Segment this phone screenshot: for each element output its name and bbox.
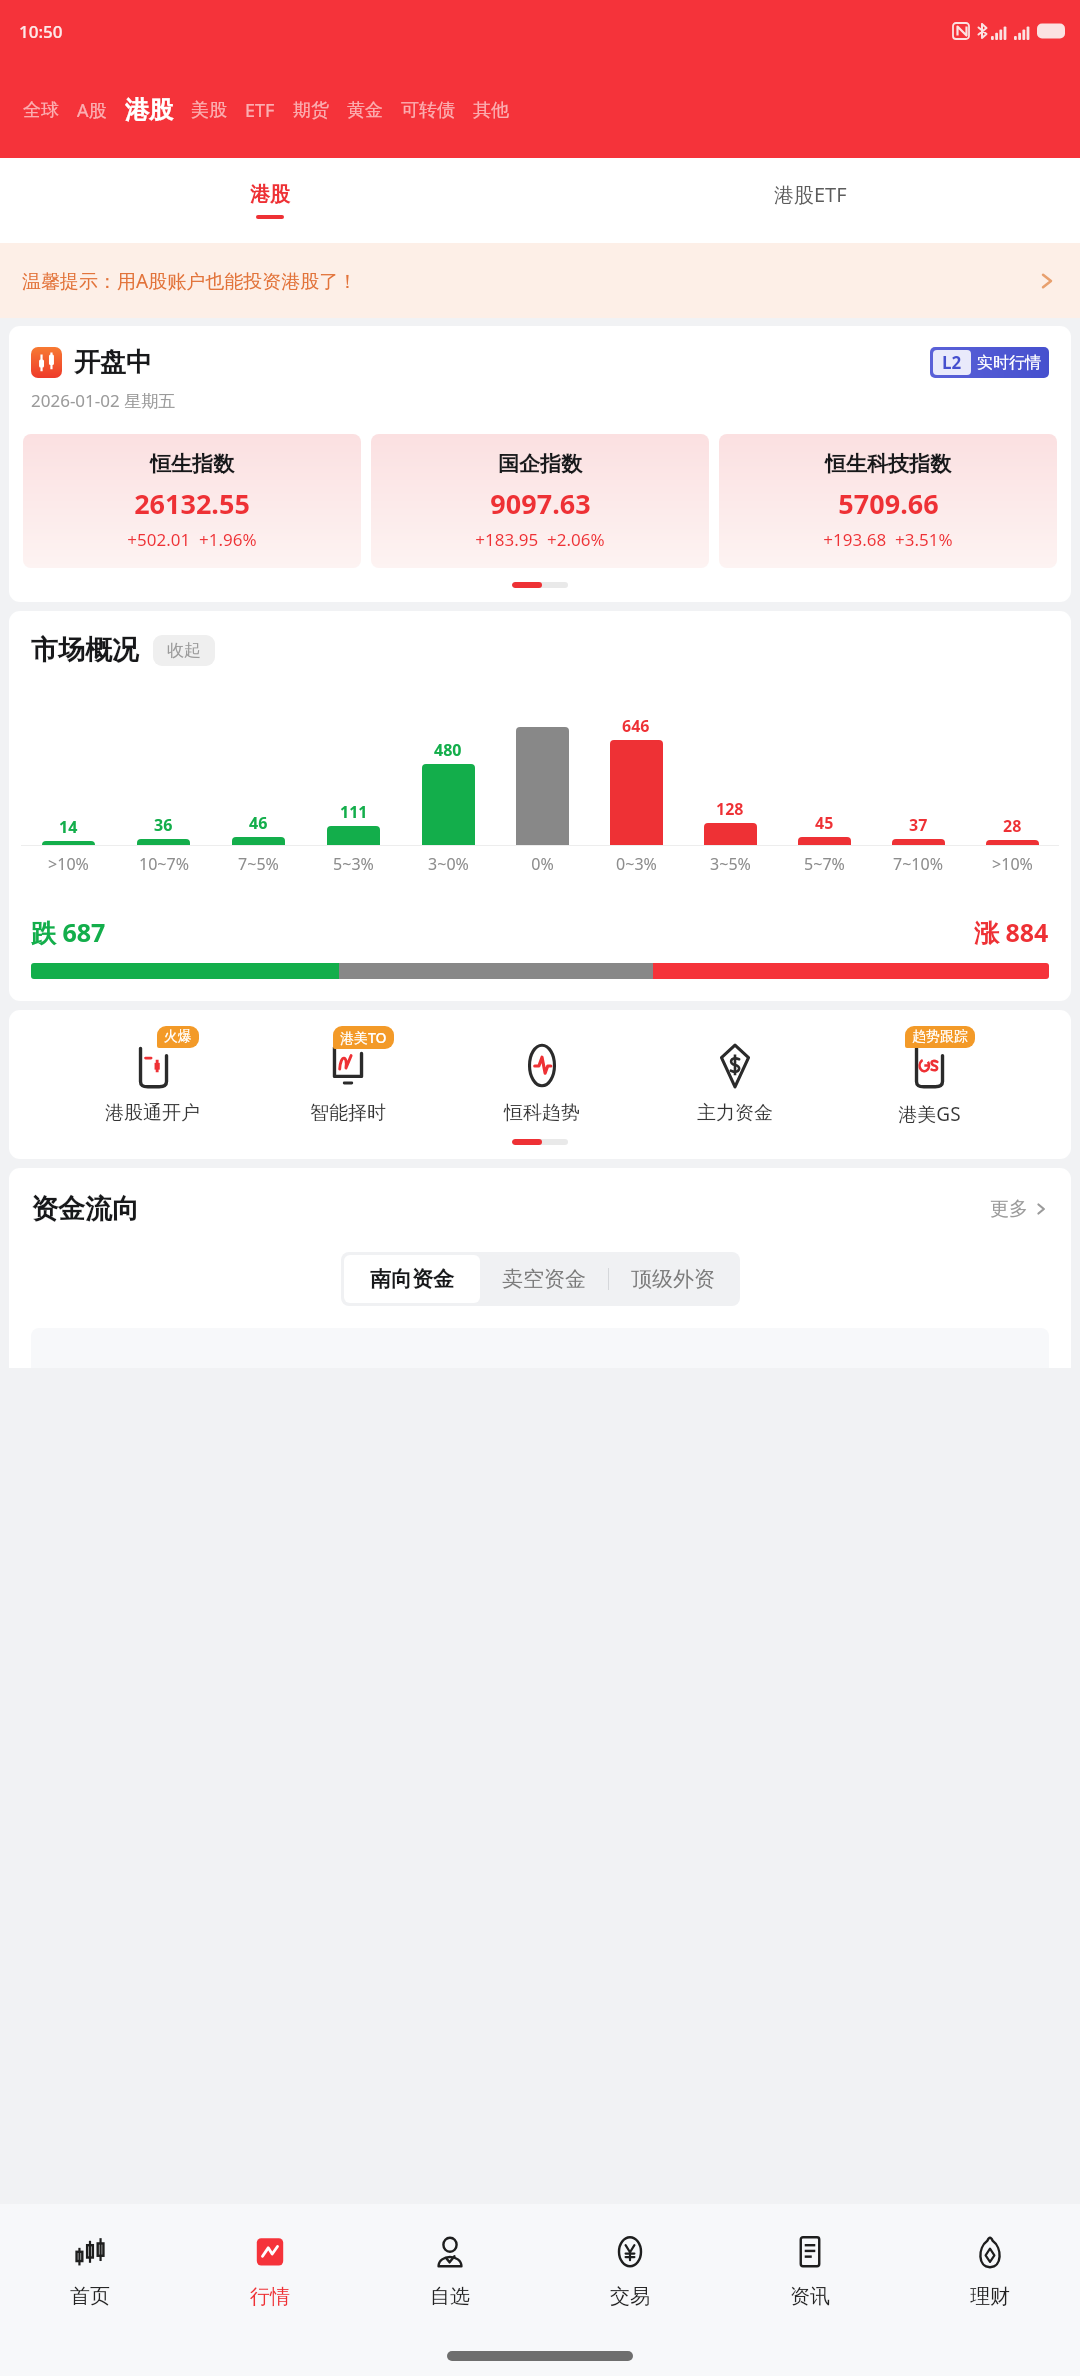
- button[interactable]: A股: [68, 92, 116, 129]
- button[interactable]: ETF: [236, 92, 284, 129]
- staticText: 实时行情: [977, 353, 1041, 373]
- button[interactable]: 全球: [14, 93, 68, 128]
- staticText: 美股: [191, 99, 227, 122]
- button[interactable]: 可转债: [392, 93, 464, 128]
- button[interactable]: 期货: [284, 93, 338, 128]
- staticText: 128: [716, 798, 744, 820]
- staticText: +183.95 +2.06%: [475, 528, 605, 551]
- staticText: 更多: [990, 1197, 1028, 1221]
- staticText: 全球: [23, 99, 59, 122]
- staticText: 涨 884: [974, 915, 1049, 949]
- staticText: 港股: [125, 95, 173, 125]
- button[interactable]: 恒生指数: [23, 434, 361, 568]
- staticText: 37: [909, 814, 928, 836]
- staticText: 10:50: [19, 20, 63, 43]
- staticText: 其他: [473, 99, 509, 122]
- button[interactable]: 自选: [360, 2204, 540, 2336]
- button[interactable]: 恒科趋势: [490, 1028, 594, 1125]
- staticText: 自选: [430, 2284, 470, 2309]
- button[interactable]: 黄金: [338, 93, 392, 128]
- staticText: 14: [59, 816, 78, 838]
- staticText: 期货: [293, 99, 329, 122]
- staticText: 5~3%: [333, 853, 374, 875]
- button[interactable]: 恒生科技指数: [719, 434, 1057, 568]
- staticText: 智能择时: [310, 1101, 386, 1125]
- staticText: 2026-01-02 星期五: [31, 389, 176, 412]
- staticText: 国企指数: [498, 451, 582, 477]
- staticText: 温馨提示：用A股账户也能投资港股了！: [22, 268, 358, 294]
- staticText: 36: [154, 814, 173, 836]
- staticText: 7~10%: [893, 853, 943, 875]
- staticText: 28: [1003, 815, 1022, 837]
- staticText: 港美GS: [898, 1101, 961, 1127]
- staticText: 5709.66: [838, 485, 939, 522]
- button[interactable]: 卖空资金: [480, 1255, 608, 1303]
- staticText: 趋势跟踪: [912, 1028, 968, 1046]
- staticText: +193.68 +3.51%: [823, 528, 953, 551]
- button[interactable]: 资讯: [720, 2204, 900, 2336]
- button[interactable]: 顶级外资: [609, 1255, 737, 1303]
- staticText: 资金流向: [31, 1192, 139, 1226]
- staticText: 7~5%: [238, 853, 279, 875]
- staticText: 开盘中: [74, 346, 152, 379]
- staticText: 港股通开户: [105, 1101, 200, 1125]
- staticText: 资讯: [790, 2284, 830, 2309]
- button[interactable]: 南向资金: [344, 1255, 480, 1303]
- button[interactable]: 主力资金: [683, 1028, 787, 1125]
- staticText: 恒生指数: [150, 451, 234, 477]
- staticText: A股: [77, 98, 107, 123]
- button[interactable]: 理财: [900, 2204, 1080, 2336]
- staticText: 收起: [167, 640, 201, 661]
- staticText: 理财: [970, 2284, 1010, 2309]
- button[interactable]: 港股: [116, 89, 182, 131]
- staticText: 火爆: [164, 1028, 192, 1046]
- staticText: 黄金: [347, 99, 383, 122]
- staticText: 南向资金: [370, 1266, 454, 1292]
- staticText: 可转债: [401, 99, 455, 122]
- staticText: 跌 687: [31, 915, 106, 949]
- staticText: 市场概况: [31, 633, 139, 667]
- button[interactable]: L2: [930, 347, 1049, 378]
- staticText: >10%: [48, 853, 89, 875]
- staticText: 5~7%: [804, 853, 845, 875]
- staticText: 行情: [250, 2284, 290, 2309]
- staticText: 480: [434, 739, 462, 761]
- staticText: 港美TO: [340, 1028, 387, 1047]
- staticText: 交易: [610, 2284, 650, 2309]
- button[interactable]: 开盘中: [9, 326, 1071, 602]
- button[interactable]: 趋势跟踪: [877, 1028, 981, 1127]
- staticText: 10~7%: [139, 853, 189, 875]
- staticText: 45: [815, 812, 834, 834]
- staticText: 0~3%: [616, 853, 657, 875]
- staticText: 111: [340, 801, 368, 823]
- button[interactable]: 其他: [464, 93, 518, 128]
- staticText: >10%: [992, 853, 1033, 875]
- button[interactable]: 温馨提示：用A股账户也能投资港股了！: [0, 243, 1080, 318]
- staticText: 46: [249, 812, 268, 834]
- button[interactable]: 更多: [990, 1197, 1049, 1221]
- button[interactable]: 收起: [153, 635, 215, 666]
- staticText: 港股: [250, 182, 290, 207]
- button[interactable]: 行情: [180, 2204, 360, 2336]
- staticText: ETF: [245, 98, 275, 123]
- staticText: 主力资金: [697, 1101, 773, 1125]
- staticText: 恒科趋势: [504, 1101, 580, 1125]
- button[interactable]: 首页: [0, 2204, 180, 2336]
- button[interactable]: 港美TO: [296, 1028, 400, 1125]
- staticText: 646: [622, 715, 650, 737]
- button[interactable]: 港股: [0, 158, 540, 243]
- button[interactable]: 交易: [540, 2204, 720, 2336]
- staticText: L2: [942, 351, 962, 374]
- button[interactable]: 港股ETF: [540, 158, 1080, 243]
- button[interactable]: 火爆: [99, 1028, 206, 1125]
- staticText: 港股ETF: [774, 181, 847, 208]
- staticText: 9097.63: [490, 485, 591, 522]
- button[interactable]: 美股: [182, 93, 236, 128]
- staticText: 卖空资金: [502, 1266, 586, 1292]
- staticText: +502.01 +1.96%: [127, 528, 257, 551]
- staticText: 顶级外资: [631, 1266, 715, 1292]
- staticText: 恒生科技指数: [825, 451, 951, 477]
- staticText: 26132.55: [134, 485, 250, 522]
- button[interactable]: 国企指数: [371, 434, 709, 568]
- staticText: 3~0%: [428, 853, 469, 875]
